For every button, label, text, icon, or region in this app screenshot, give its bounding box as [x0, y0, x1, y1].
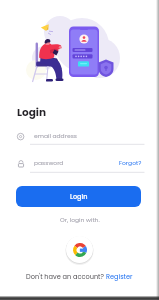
staticText: Login: [17, 105, 47, 120]
button[interactable]: Login: [16, 186, 141, 207]
button[interactable]: Sign in with Google: [65, 235, 94, 264]
button[interactable]: email address: [16, 131, 145, 146]
staticText: Forgot?: [119, 159, 142, 167]
button[interactable]: Forgot?: [119, 159, 142, 167]
button[interactable]: password: [34, 159, 64, 167]
button[interactable]: Register: [106, 272, 133, 281]
staticText: Login: [70, 192, 88, 201]
staticText: Don't have an account?: [26, 272, 106, 281]
staticText: password: [34, 159, 64, 167]
staticText: email address: [34, 132, 77, 140]
staticText: Or, login with.: [60, 216, 100, 224]
